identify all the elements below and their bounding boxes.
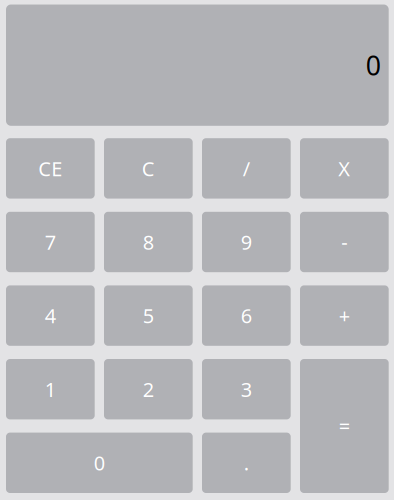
button[interactable]: 5 bbox=[104, 285, 193, 346]
staticText: / bbox=[243, 155, 250, 182]
button[interactable]: = bbox=[300, 359, 389, 493]
staticText: 5 bbox=[143, 302, 154, 329]
staticText: 2 bbox=[143, 376, 154, 402]
button[interactable]: CE bbox=[6, 138, 95, 199]
button[interactable]: 1 bbox=[6, 359, 95, 419]
button[interactable]: 7 bbox=[6, 212, 95, 272]
staticText: 0 bbox=[94, 449, 105, 476]
staticText: 1 bbox=[45, 376, 56, 402]
button[interactable]: + bbox=[300, 285, 389, 346]
button[interactable]: / bbox=[202, 138, 291, 199]
staticText: 7 bbox=[45, 229, 56, 255]
staticText: - bbox=[341, 229, 347, 255]
button[interactable]: 3 bbox=[202, 359, 291, 419]
button[interactable]: 4 bbox=[6, 285, 95, 346]
staticText: 8 bbox=[143, 229, 154, 255]
button[interactable]: 9 bbox=[202, 212, 291, 272]
staticText: + bbox=[339, 302, 350, 329]
button[interactable]: 0 bbox=[6, 433, 193, 493]
button[interactable]: 6 bbox=[202, 285, 291, 346]
staticText: CE bbox=[38, 155, 62, 182]
button[interactable]: C bbox=[104, 138, 193, 199]
staticText: 6 bbox=[241, 302, 252, 329]
button[interactable]: X bbox=[300, 138, 389, 199]
staticText: 3 bbox=[241, 376, 252, 402]
staticText: = bbox=[339, 413, 350, 439]
button[interactable]: 8 bbox=[104, 212, 193, 272]
staticText: C bbox=[142, 155, 155, 182]
staticText: 4 bbox=[45, 302, 56, 329]
staticText: 0 bbox=[366, 47, 381, 83]
staticText: 9 bbox=[241, 229, 252, 255]
button[interactable]: - bbox=[300, 212, 389, 272]
staticText: X bbox=[338, 155, 350, 182]
button[interactable]: . bbox=[202, 433, 291, 493]
staticText: . bbox=[244, 449, 249, 476]
button[interactable]: 2 bbox=[104, 359, 193, 419]
